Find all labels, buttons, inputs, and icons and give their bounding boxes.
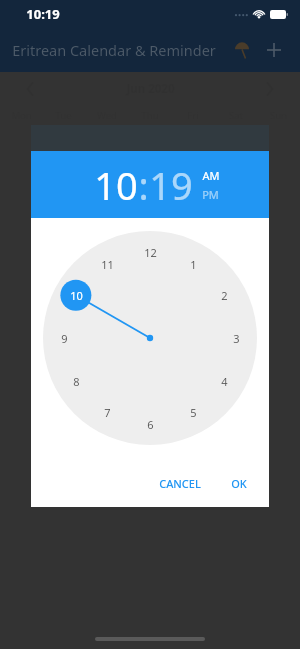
button[interactable]: OK — [223, 470, 255, 497]
staticText: 11 — [101, 257, 114, 272]
staticText: 11 — [144, 213, 156, 227]
staticText: 9 — [61, 331, 68, 346]
staticText: 18 — [144, 251, 156, 265]
staticText: 9 — [61, 213, 67, 227]
staticText: 3 — [104, 175, 110, 189]
staticText: 19 — [149, 159, 193, 211]
button[interactable]: Holidays — [226, 34, 258, 66]
button[interactable]: AM — [202, 168, 220, 183]
button[interactable]: Clock face, hour 10 selected — [43, 231, 257, 445]
staticText: CANCEL — [159, 476, 201, 491]
staticText: 3 — [233, 331, 240, 346]
staticText: OK — [231, 476, 247, 491]
staticText: 2 — [221, 288, 228, 303]
staticText: 13 — [230, 213, 242, 227]
staticText: 19 — [187, 251, 199, 265]
button[interactable]: CANCEL — [151, 470, 209, 497]
staticText: 4 — [147, 175, 153, 189]
staticText: Eritrean Calendar & Reminder — [12, 40, 216, 60]
staticText: 4 — [221, 374, 228, 389]
staticText: 8 — [73, 374, 80, 389]
staticText: 10 — [101, 213, 113, 227]
staticText: 23 — [58, 289, 70, 303]
staticText: PM — [202, 187, 219, 202]
staticText: 6 — [147, 417, 154, 432]
staticText: 5 — [190, 175, 196, 189]
button[interactable]: 10 — [94, 159, 138, 211]
staticText: 10 — [94, 159, 138, 211]
button[interactable]: Add — [258, 34, 290, 66]
staticText: 7 — [104, 405, 111, 420]
staticText: 12 — [144, 245, 157, 260]
staticText: 5 — [190, 405, 197, 420]
staticText: 12 — [187, 213, 199, 227]
staticText: 10 — [70, 288, 83, 303]
staticText: AM — [202, 168, 220, 183]
button[interactable]: 19 — [149, 159, 193, 211]
staticText: 17 — [101, 251, 113, 265]
staticText: : — [138, 159, 149, 211]
staticText: 1 — [190, 257, 197, 272]
staticText: 10:19 — [26, 5, 60, 23]
button[interactable]: PM — [202, 187, 219, 202]
